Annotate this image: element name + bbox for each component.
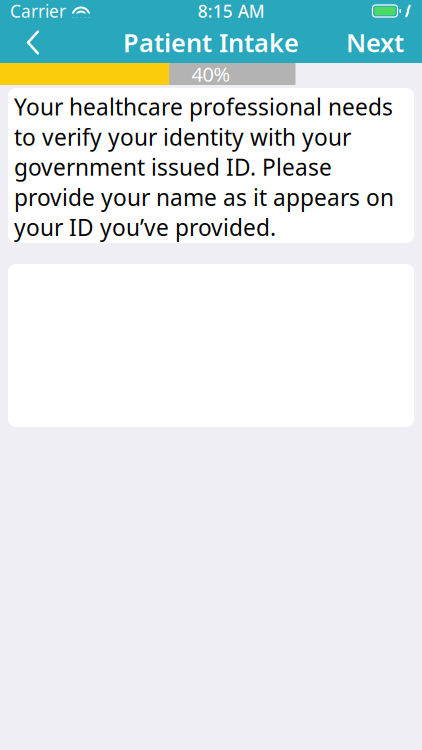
button[interactable]: Next: [334, 22, 416, 62]
staticText: Your healthcare professional needs to ve…: [14, 92, 394, 242]
staticText: Carrier: [10, 0, 66, 22]
staticText: 40%: [191, 61, 230, 87]
staticText: Next: [346, 26, 404, 59]
staticText: 8:15 AM: [198, 0, 265, 22]
button[interactable]: Back: [6, 22, 60, 62]
staticText: Patient Intake: [123, 26, 299, 59]
